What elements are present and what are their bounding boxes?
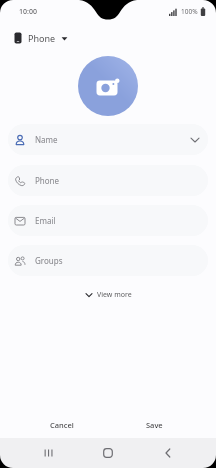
staticText: 10:00 [19, 7, 37, 17]
staticText: View more [97, 290, 132, 300]
staticText: Email [35, 215, 56, 226]
button[interactable] [78, 56, 138, 116]
button[interactable] [138, 438, 198, 468]
staticText: 100% [181, 7, 198, 16]
staticText: Name [35, 134, 58, 145]
button[interactable]: View more [81, 286, 136, 304]
button[interactable]: Save [108, 412, 200, 438]
button[interactable] [78, 438, 138, 468]
staticText: Save [146, 420, 163, 430]
staticText: Groups [35, 255, 63, 266]
staticText: Cancel [50, 420, 74, 430]
button[interactable]: Email [8, 205, 208, 236]
staticText: Phone [28, 32, 56, 44]
button[interactable]: Cancel [16, 412, 108, 438]
staticText: Phone [35, 175, 60, 186]
button[interactable]: Phone [8, 165, 208, 196]
button[interactable]: Phone [14, 32, 68, 44]
button[interactable]: Groups [8, 245, 208, 276]
button[interactable]: Name [8, 124, 208, 155]
button[interactable] [18, 438, 78, 468]
